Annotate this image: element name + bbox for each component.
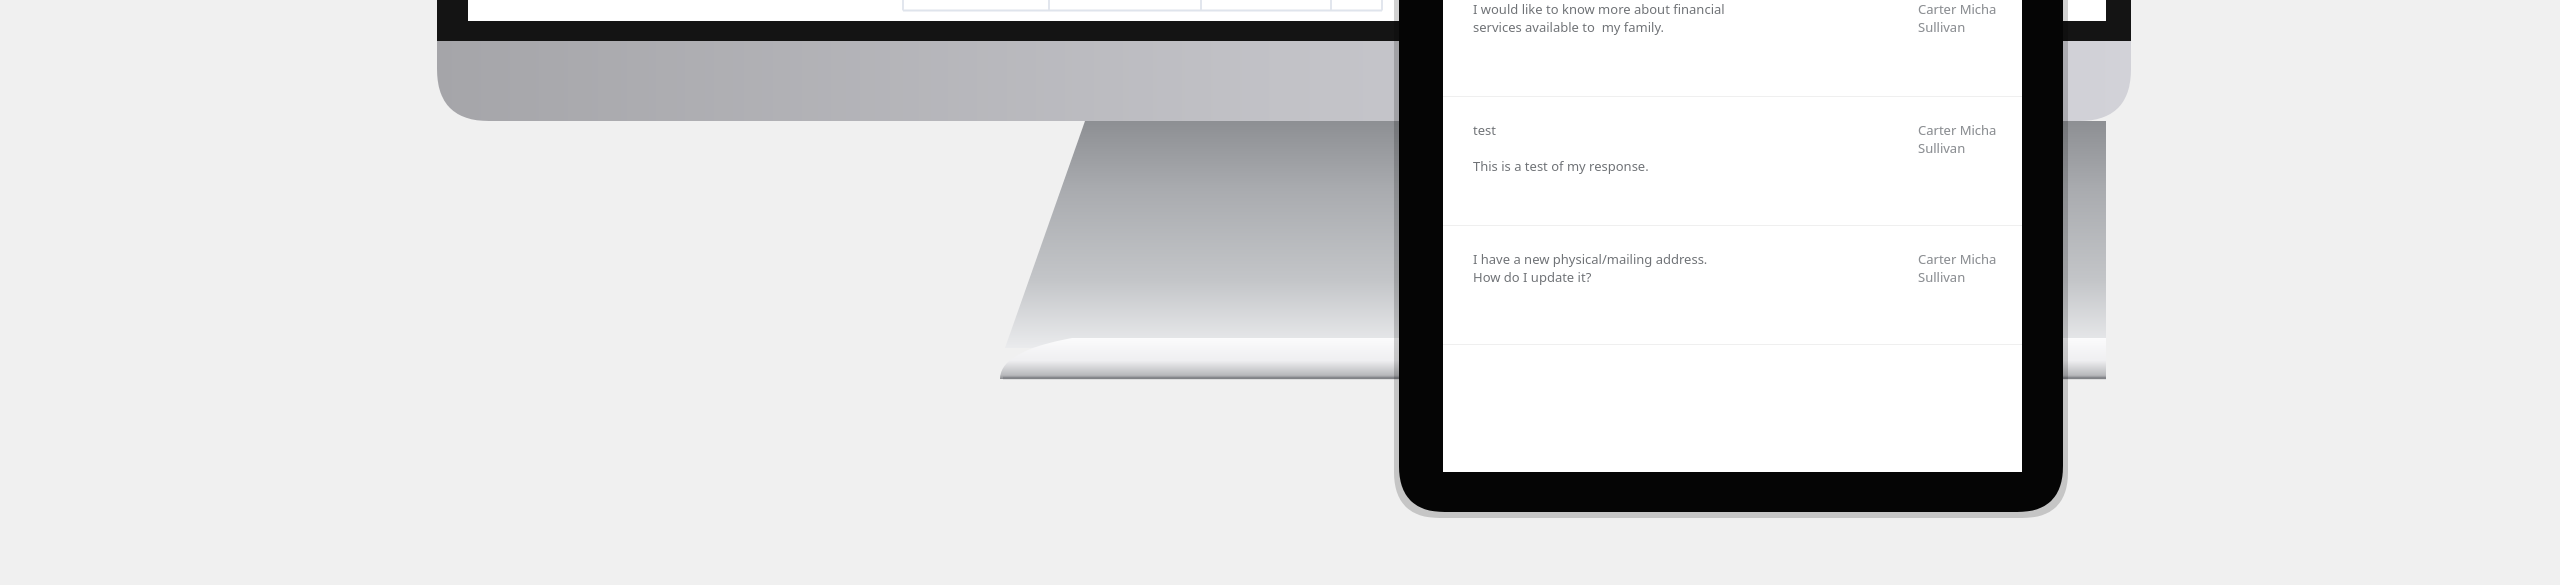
staticText: Carter Micha Sullivan [1918, 121, 2014, 157]
button[interactable]: I would like to know more about financia… [1443, 0, 2022, 96]
staticText: test This is a test of my response. [1473, 121, 1918, 175]
staticText: Carter Micha Sullivan [1918, 250, 2014, 286]
other: Desktop monitor and tablet product photo [0, 0, 2560, 585]
staticText: I would like to know more about financia… [1473, 0, 1918, 36]
button[interactable]: test This is a test of my response. [1443, 97, 2022, 225]
staticText: I have a new physical/mailing address. H… [1473, 250, 1918, 286]
button[interactable]: I have a new physical/mailing address. H… [1443, 226, 2022, 344]
staticText: Carter Micha Sullivan [1918, 0, 2014, 36]
